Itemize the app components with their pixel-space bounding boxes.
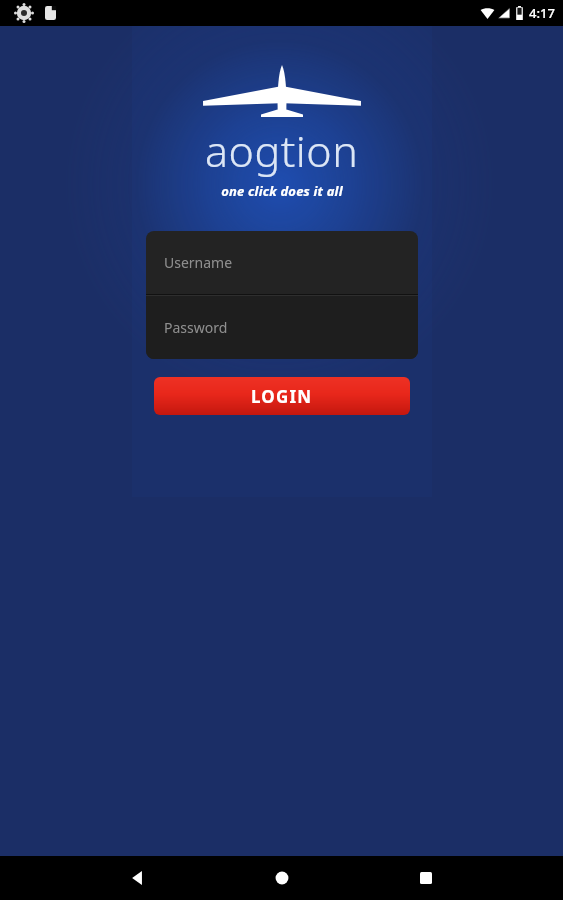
button[interactable]: LOGIN (154, 377, 410, 415)
staticText: aogtion (205, 121, 359, 180)
button[interactable]: Password (146, 296, 418, 359)
button[interactable]: Username (146, 231, 418, 294)
button[interactable]: Recent apps (404, 856, 448, 900)
staticText: one click does it all (221, 182, 343, 200)
button[interactable]: Home (260, 856, 304, 900)
staticText: 4:17 (529, 4, 555, 22)
staticText: LOGIN (251, 385, 313, 408)
staticText: Username (164, 253, 233, 272)
button[interactable]: Back (116, 856, 160, 900)
staticText: Password (164, 318, 228, 337)
